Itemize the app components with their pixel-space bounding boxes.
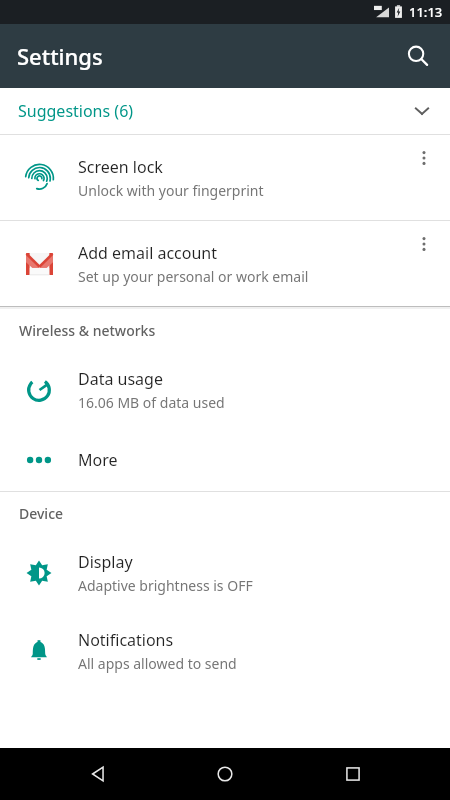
staticText: Display [78, 551, 133, 573]
button[interactable]: Notifications [0, 612, 450, 690]
button[interactable]: More [0, 429, 450, 491]
button[interactable]: Data usage [0, 351, 450, 429]
button[interactable]: Display [0, 534, 450, 612]
button[interactable]: Search [394, 32, 442, 80]
staticText: All apps allowed to send [78, 654, 237, 673]
button[interactable]: More options [403, 137, 445, 179]
staticText: Notifications [78, 629, 174, 651]
button[interactable]: Add email account [0, 221, 450, 306]
staticText: Unlock with your fingerprint [78, 181, 264, 200]
button[interactable]: More options [403, 223, 445, 265]
staticText: Data usage [78, 368, 163, 390]
staticText: Wireless & networks [19, 321, 156, 340]
staticText: Screen lock [78, 156, 163, 178]
staticText: Device [19, 504, 64, 523]
staticText: More [78, 449, 118, 471]
staticText: 16.06 MB of data used [78, 393, 225, 412]
staticText: Add email account [78, 242, 218, 264]
staticText: Adaptive brightness is OFF [78, 576, 253, 595]
staticText: Suggestions (6) [18, 100, 134, 122]
button[interactable]: Suggestions (6) [0, 88, 450, 134]
button[interactable]: Back [68, 748, 128, 800]
button[interactable]: Screen lock [0, 135, 450, 220]
staticText: Settings [17, 41, 103, 71]
button[interactable]: Home [195, 748, 255, 800]
staticText: Set up your personal or work email [78, 267, 309, 286]
staticText: 11:13 [409, 3, 443, 21]
button[interactable]: Recent apps [323, 748, 383, 800]
